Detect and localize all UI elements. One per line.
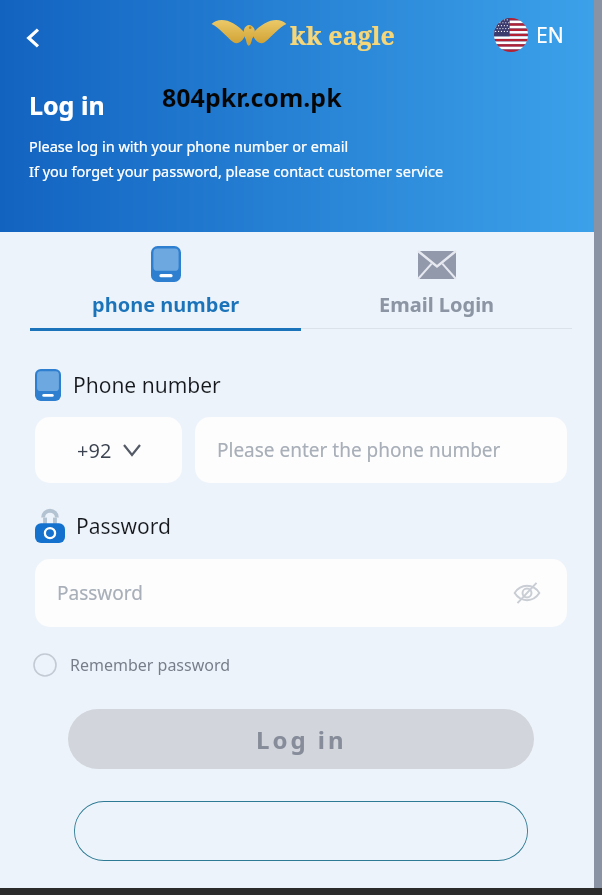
- button[interactable]: Please enter the phone number: [195, 417, 567, 483]
- button[interactable]: Log in: [68, 709, 534, 769]
- button[interactable]: +92: [35, 417, 182, 483]
- staticText: Log in: [29, 88, 105, 122]
- staticText: Email Login: [379, 291, 495, 318]
- button[interactable]: EN: [494, 18, 564, 52]
- button[interactable]: Remember password: [33, 653, 231, 677]
- staticText: If you forget your password, please cont…: [29, 161, 444, 181]
- staticText: Log in: [256, 723, 347, 756]
- staticText: Please enter the phone number: [217, 437, 501, 463]
- button[interactable]: kk eagle: [210, 12, 395, 58]
- staticText: kk eagle: [290, 18, 395, 52]
- staticText: 804pkr.com.pk: [162, 80, 342, 114]
- button[interactable]: Password: [35, 559, 567, 627]
- staticText: Remember password: [70, 654, 231, 676]
- staticText: +92: [77, 437, 112, 464]
- staticText: EN: [536, 21, 564, 50]
- button[interactable]: Back: [14, 18, 54, 58]
- button[interactable]: phone number: [30, 246, 301, 318]
- staticText: Password: [76, 512, 171, 541]
- staticText: Please log in with your phone number or …: [29, 136, 349, 156]
- button[interactable]: Email Login: [301, 246, 572, 318]
- staticText: Phone number: [73, 371, 221, 400]
- button[interactable]: Show password: [509, 575, 545, 611]
- staticText: Password: [57, 580, 143, 606]
- staticText: phone number: [92, 291, 240, 318]
- button[interactable]: [74, 801, 528, 861]
